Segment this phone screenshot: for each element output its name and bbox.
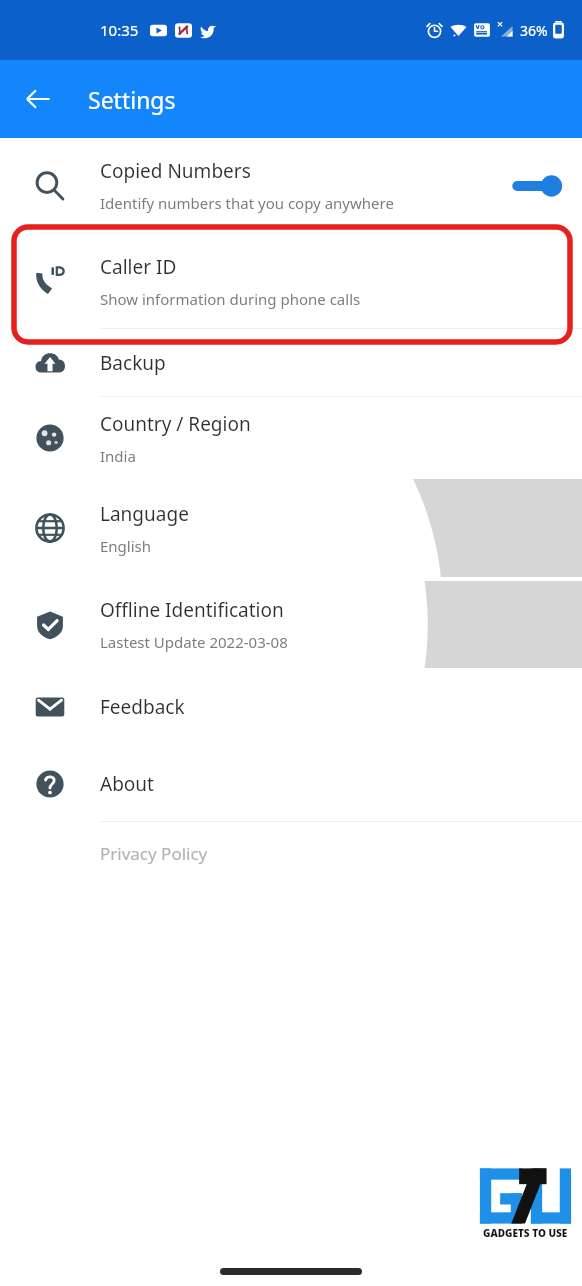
staticText: Feedback	[100, 694, 185, 720]
button[interactable]: Copied Numbers	[0, 138, 582, 233]
staticText: Show information during phone calls	[100, 289, 361, 309]
button[interactable]: Offline Identification	[0, 581, 582, 668]
button[interactable]: Language	[0, 479, 582, 577]
staticText: India	[100, 446, 136, 466]
button[interactable]: Feedback	[0, 668, 582, 745]
staticText: 10:35	[100, 20, 139, 40]
button[interactable]: About	[0, 745, 582, 822]
staticText: Caller ID	[100, 254, 177, 280]
staticText: Backup	[100, 350, 166, 376]
staticText: 36%	[520, 21, 548, 40]
staticText: Language	[100, 501, 189, 527]
staticText: English	[100, 536, 152, 556]
staticText: Country / Region	[100, 411, 251, 437]
button[interactable]: Backup	[0, 329, 582, 397]
button[interactable]: Copied Numbers toggle	[510, 169, 566, 203]
button[interactable]: Country / Region	[0, 397, 582, 479]
staticText: Privacy Policy	[100, 842, 208, 865]
staticText: Settings	[88, 84, 176, 115]
staticText: Offline Identification	[100, 597, 284, 623]
staticText: Lastest Update 2022-03-08	[100, 632, 288, 652]
button[interactable]: Back	[12, 73, 64, 125]
staticText: GADGETS TO USE	[483, 1226, 568, 1240]
staticText: Copied Numbers	[100, 158, 251, 184]
button[interactable]: Caller ID	[0, 233, 582, 329]
staticText: Identify numbers that you copy anywhere	[100, 193, 394, 213]
button[interactable]: Privacy Policy	[0, 822, 582, 884]
staticText: About	[100, 771, 154, 797]
